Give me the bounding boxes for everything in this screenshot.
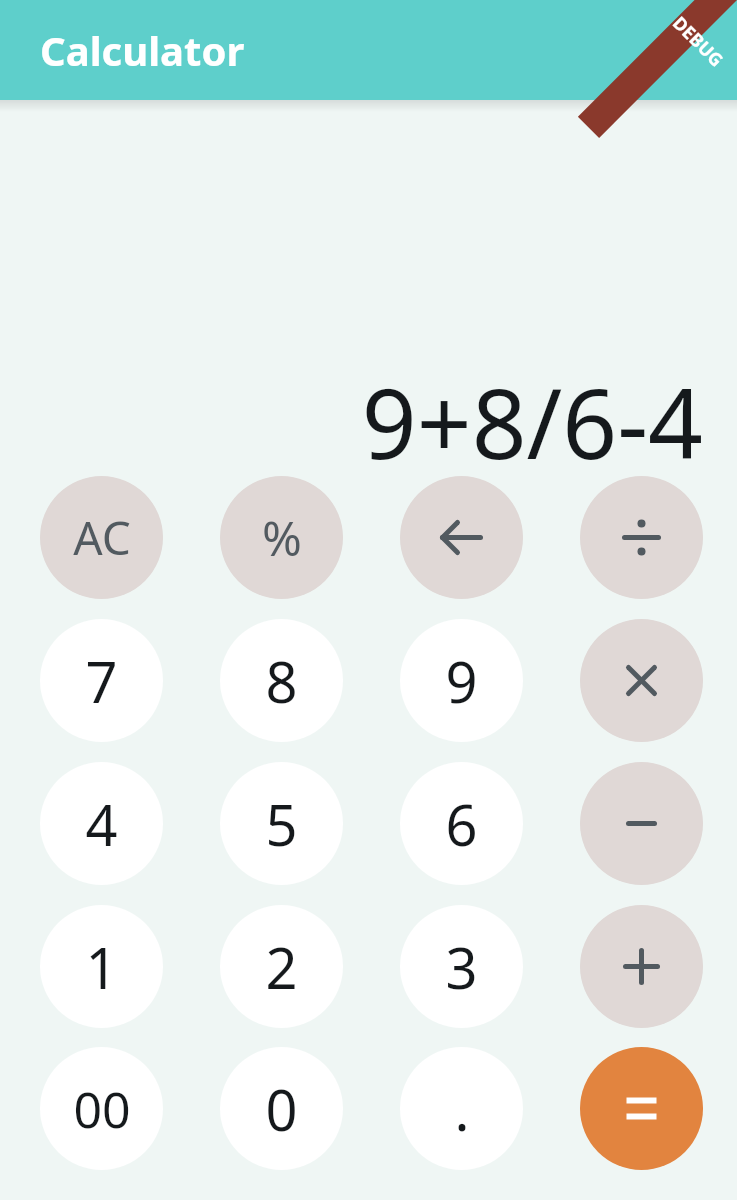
staticText: 9+8/6-4 [34, 356, 703, 487]
staticText: % [262, 505, 302, 570]
staticText: 4 [85, 786, 118, 862]
button[interactable]: 0 [220, 1047, 343, 1170]
button[interactable]: % [220, 476, 343, 599]
staticText: 8 [265, 643, 298, 719]
staticText: 5 [265, 786, 298, 862]
staticText: 2 [265, 929, 298, 1005]
button[interactable]: 2 [220, 905, 343, 1028]
button[interactable]: 3 [400, 905, 523, 1028]
button[interactable]: Multiply [580, 619, 703, 742]
button[interactable]: 1 [40, 905, 163, 1028]
button[interactable]: Divide [580, 476, 703, 599]
button[interactable]: Equals [580, 1047, 703, 1170]
staticText: 9 [445, 643, 478, 719]
button[interactable]: AC [40, 476, 163, 599]
button[interactable]: 00 [40, 1047, 163, 1170]
staticText: AC [73, 506, 131, 569]
button[interactable]: 9 [400, 619, 523, 742]
staticText: Calculator [40, 23, 245, 77]
button[interactable]: 6 [400, 762, 523, 885]
staticText: 00 [73, 1075, 131, 1143]
staticText: 0 [265, 1071, 298, 1147]
button[interactable]: Minus [580, 762, 703, 885]
button[interactable]: 5 [220, 762, 343, 885]
button[interactable]: 7 [40, 619, 163, 742]
staticText: 3 [445, 929, 478, 1005]
button[interactable]: . [400, 1047, 523, 1170]
button[interactable]: 8 [220, 619, 343, 742]
button[interactable]: Backspace [400, 476, 523, 599]
staticText: 7 [85, 643, 118, 719]
button[interactable]: Plus [580, 905, 703, 1028]
staticText: . [454, 1071, 470, 1147]
staticText: DEBUG [667, 11, 729, 72]
staticText: 1 [85, 929, 118, 1005]
button[interactable]: 4 [40, 762, 163, 885]
staticText: 6 [445, 786, 478, 862]
